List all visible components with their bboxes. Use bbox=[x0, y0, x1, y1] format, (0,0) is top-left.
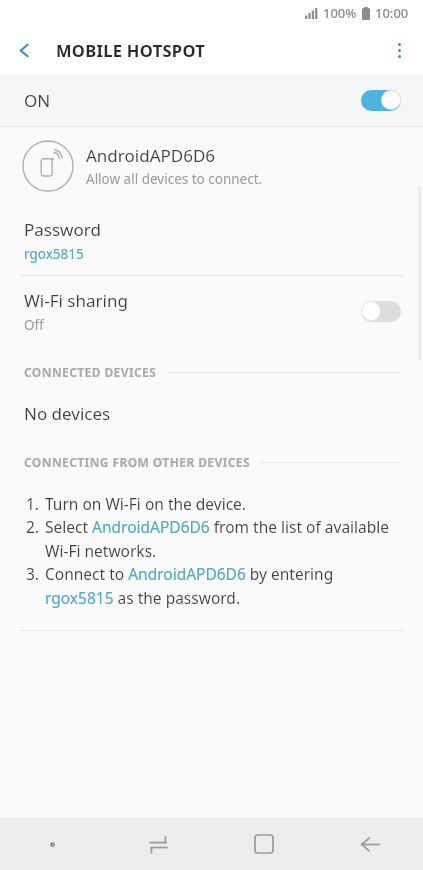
staticText: Connect to AndroidAPD6D6 by entering rgo… bbox=[45, 563, 401, 608]
staticText: Select AndroidAPD6D6 from the list of av… bbox=[45, 516, 401, 561]
staticText: Password bbox=[24, 218, 101, 241]
button[interactable]: Wi-Fi sharing bbox=[0, 276, 423, 346]
button[interactable]: More options bbox=[375, 26, 423, 74]
button[interactable]: Back bbox=[0, 26, 48, 74]
staticText: Wi-Fi sharing bbox=[24, 289, 128, 312]
staticText: MOBILE HOTSPOT bbox=[56, 39, 206, 61]
staticText: 100% bbox=[323, 4, 357, 22]
staticText: 10:00 bbox=[375, 4, 409, 22]
staticText: rgox5815 bbox=[24, 245, 84, 263]
button[interactable]: Menu indicator bbox=[0, 818, 105, 870]
staticText: 1. bbox=[26, 493, 45, 514]
staticText: 2. bbox=[26, 516, 45, 537]
staticText: CONNECTED DEVICES bbox=[24, 364, 157, 380]
button[interactable]: AndroidAPD6D6 bbox=[0, 127, 423, 205]
staticText: Turn on Wi-Fi on the device. bbox=[45, 493, 247, 514]
button[interactable]: Recents bbox=[105, 818, 211, 870]
button[interactable]: Home bbox=[211, 818, 317, 870]
staticText: 3. bbox=[26, 563, 45, 584]
button[interactable]: ON bbox=[0, 74, 423, 126]
button[interactable]: Back bbox=[317, 818, 423, 870]
button[interactable]: Toggle off bbox=[359, 299, 403, 323]
staticText: Allow all devices to connect. bbox=[86, 170, 263, 188]
staticText: Off bbox=[24, 316, 44, 334]
staticText: ON bbox=[24, 89, 51, 112]
staticText: No devices bbox=[24, 402, 111, 425]
staticText: CONNECTING FROM OTHER DEVICES bbox=[24, 454, 250, 470]
button[interactable]: Toggle on bbox=[359, 88, 403, 112]
button[interactable]: Password bbox=[0, 205, 423, 275]
staticText: AndroidAPD6D6 bbox=[86, 144, 216, 167]
